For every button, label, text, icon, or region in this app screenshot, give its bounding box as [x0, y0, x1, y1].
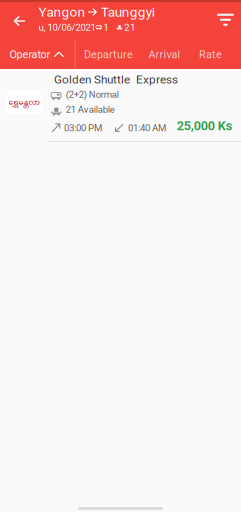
staticText: ရွှေမန္တလာ: [8, 95, 39, 111]
staticText: 21: [124, 22, 136, 33]
staticText: Operator: [10, 48, 51, 61]
staticText: Departure: [84, 48, 133, 61]
button[interactable]: Back: [0, 2, 38, 40]
button[interactable]: ရွှေမန္တလာ: [0, 69, 241, 141]
staticText: Yangon: [38, 4, 85, 20]
staticText: 21 Available: [66, 104, 115, 115]
staticText: Golden Shuttle Express: [54, 72, 178, 86]
button[interactable]: Departure: [74, 40, 142, 69]
staticText: u, 10/06/2021: [38, 22, 95, 33]
staticText: Arrival: [148, 48, 180, 61]
staticText: 01:40 AM: [128, 122, 166, 134]
staticText: 1: [103, 22, 109, 33]
button[interactable]: Arrival: [142, 40, 186, 69]
staticText: Taunggyi: [101, 4, 155, 20]
button[interactable]: Rate: [186, 40, 234, 69]
staticText: 25,000 Ks: [177, 119, 233, 133]
button[interactable]: Filter: [217, 2, 241, 40]
button[interactable]: Operator: [0, 40, 74, 69]
staticText: 03:00 PM: [64, 122, 102, 134]
staticText: Rate: [199, 48, 222, 61]
staticText: (2+2) Normal: [66, 89, 119, 100]
